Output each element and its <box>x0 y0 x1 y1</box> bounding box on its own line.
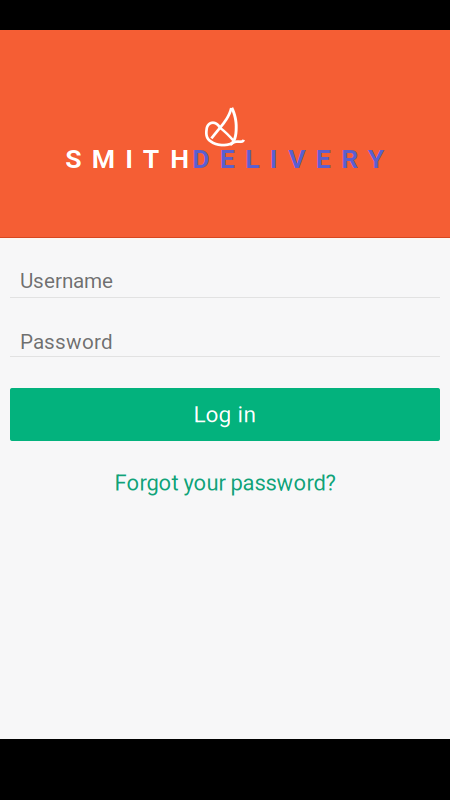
button[interactable]: Log in <box>10 388 440 441</box>
staticText: Forgot your password? <box>114 470 335 496</box>
staticText: SMITH <box>65 143 189 175</box>
staticText: Username <box>20 269 113 293</box>
staticText: DELIVERY <box>192 143 385 175</box>
button[interactable]: Forgot your password? <box>10 441 440 531</box>
staticText: Log in <box>193 401 256 428</box>
staticText: Password <box>20 330 113 354</box>
